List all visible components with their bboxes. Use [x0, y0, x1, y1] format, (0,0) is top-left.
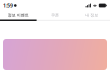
- button[interactable]: Event banner: [3, 39, 107, 70]
- button[interactable]: 내 정보: [73, 11, 110, 19]
- staticText: 내 정보: [85, 13, 98, 18]
- staticText: 정보 이벤트: [8, 13, 29, 18]
- button[interactable]: 쿠폰: [37, 11, 73, 19]
- button[interactable]: 정보 이벤트: [0, 11, 37, 19]
- staticText: 쿠폰: [51, 13, 59, 18]
- staticText: 1:59: [3, 2, 13, 9]
